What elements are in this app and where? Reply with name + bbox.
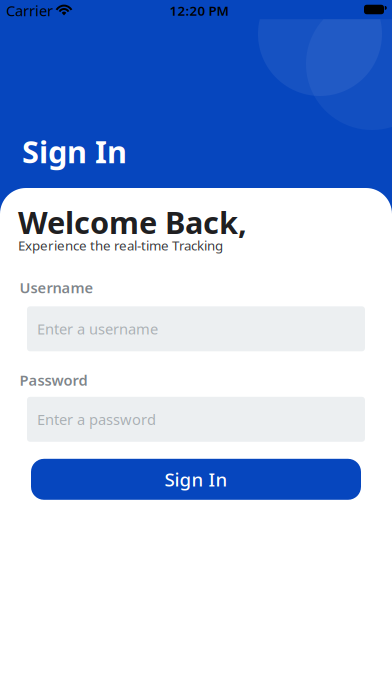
staticText: Sign In [22,131,127,172]
staticText: Experience the real-time Tracking [18,236,223,254]
button[interactable]: Sign In [31,459,361,500]
staticText: Password [19,370,87,390]
staticText: Carrier [6,1,53,20]
staticText: Enter a password [37,410,156,429]
staticText: Welcome Back, [18,202,247,242]
staticText: Enter a username [37,319,158,339]
button[interactable]: Enter a password [27,397,365,442]
staticText: 12:20 PM [169,2,228,19]
staticText: Username [19,278,93,297]
button[interactable]: Enter a username [27,306,365,351]
staticText: Sign In [164,467,227,492]
